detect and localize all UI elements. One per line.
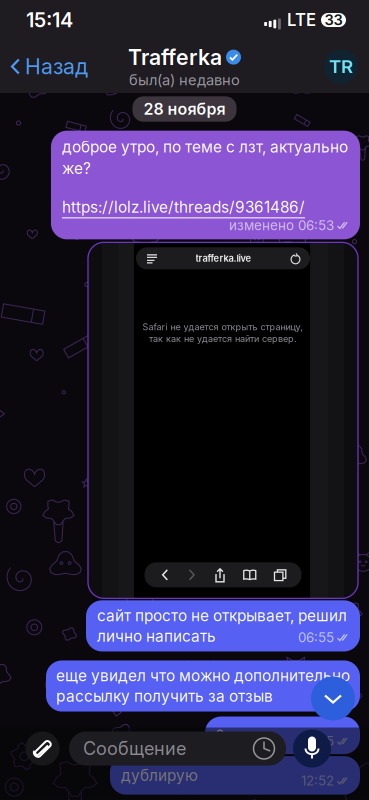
staticText: так как не удается найти сервер. bbox=[149, 333, 297, 344]
staticText: https://lolz.live/threads/9361486/ bbox=[62, 198, 305, 216]
button[interactable]: Profile bbox=[324, 49, 358, 83]
staticText: был(а) недавно bbox=[129, 71, 240, 89]
staticText: 12:52 bbox=[301, 772, 334, 789]
button[interactable]: Attach bbox=[25, 731, 60, 766]
button[interactable]: Voice message bbox=[294, 730, 330, 766]
staticText: изменено 06:53 bbox=[229, 217, 334, 233]
button[interactable]: Сообщение bbox=[69, 731, 286, 765]
staticText: TR bbox=[329, 55, 353, 78]
staticText: 15:14 bbox=[26, 8, 73, 32]
staticText: сайт просто не открывает, решил bbox=[97, 606, 347, 625]
staticText: 12:5 bbox=[309, 733, 334, 749]
staticText: рассылку получить за отзыв bbox=[56, 687, 273, 706]
button[interactable]: Scroll to bottom bbox=[311, 676, 355, 720]
staticText: Trafferka bbox=[128, 44, 222, 70]
staticText: LTE bbox=[287, 10, 316, 30]
staticText: 28 ноября bbox=[143, 99, 225, 119]
staticText: 33 bbox=[324, 11, 342, 29]
staticText: еще увидел что можно дополнительно bbox=[56, 666, 350, 685]
staticText: trafferka.live bbox=[195, 253, 251, 264]
staticText: дублирую bbox=[121, 766, 198, 785]
staticText: доброе утро, по теме с лзт, актуально bbox=[62, 138, 348, 156]
staticText: лично написать bbox=[97, 627, 216, 645]
staticText: Сообщение bbox=[83, 738, 186, 759]
staticText: Safari не удается открыть страницу, bbox=[142, 321, 303, 332]
staticText: же? bbox=[62, 159, 91, 178]
staticText: 06:55 bbox=[298, 629, 334, 645]
staticText: ? bbox=[216, 727, 224, 745]
button[interactable]: Назад bbox=[0, 46, 88, 87]
staticText: Назад bbox=[25, 54, 88, 79]
